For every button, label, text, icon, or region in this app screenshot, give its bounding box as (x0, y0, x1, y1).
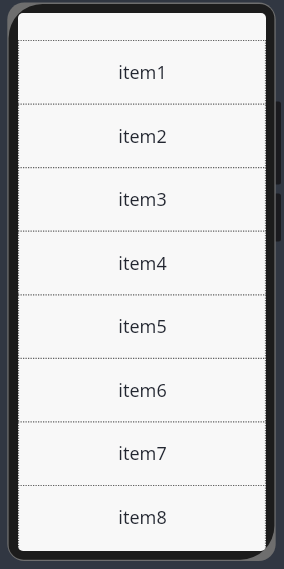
button[interactable]: item6 (18, 358, 266, 422)
staticText: item4 (118, 251, 167, 276)
button[interactable]: item7 (18, 421, 266, 485)
staticText: item3 (118, 187, 167, 212)
staticText: item1 (118, 60, 167, 85)
button[interactable]: item1 (18, 40, 266, 104)
staticText: item5 (118, 314, 167, 339)
button[interactable]: item5 (18, 294, 266, 358)
button[interactable]: item2 (18, 104, 266, 168)
staticText: item2 (118, 124, 167, 149)
button[interactable]: item3 (18, 167, 266, 231)
button[interactable]: item4 (18, 231, 266, 295)
staticText: item8 (118, 505, 167, 530)
staticText: item7 (118, 441, 167, 466)
staticText: item6 (118, 378, 167, 403)
button[interactable]: item8 (18, 485, 266, 549)
other: List borders (18, 13, 266, 551)
